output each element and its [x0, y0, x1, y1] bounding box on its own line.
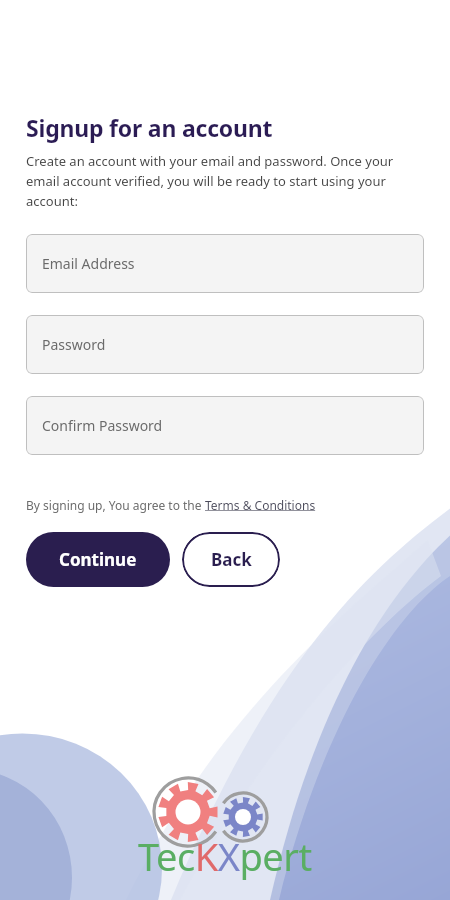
staticText: By signing up, You agree to the — [26, 497, 205, 513]
button[interactable]: Confirm Password — [26, 396, 424, 455]
staticText: TecKXpert — [138, 830, 312, 882]
staticText: Terms & Conditions — [205, 497, 316, 513]
button[interactable]: Continue — [26, 532, 170, 587]
staticText: Confirm Password — [42, 416, 163, 435]
staticText: Email Address — [42, 254, 135, 273]
staticText: Continue — [59, 548, 137, 571]
button[interactable]: Terms & Conditions — [205, 497, 316, 513]
button[interactable]: Password — [26, 315, 424, 374]
button[interactable]: Email Address — [26, 234, 424, 293]
staticText: Signup for an account — [26, 112, 273, 143]
button[interactable]: Back — [182, 532, 280, 587]
staticText: Password — [42, 335, 106, 354]
staticText: Create an account with your email and pa… — [26, 152, 426, 210]
staticText: Back — [211, 548, 252, 571]
